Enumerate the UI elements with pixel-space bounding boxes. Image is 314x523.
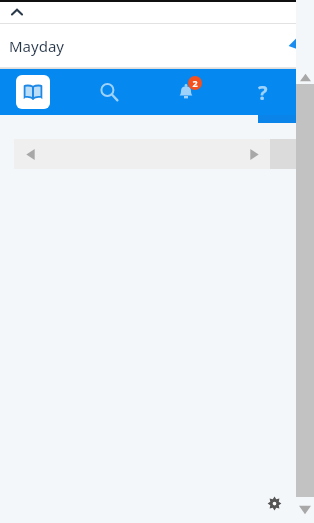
button[interactable]: Notifications (169, 75, 203, 109)
staticText: ? (258, 79, 268, 106)
button[interactable]: Scroll left (22, 146, 38, 162)
button[interactable]: Collapse (8, 4, 26, 22)
button[interactable]: App logo (284, 31, 314, 61)
staticText: 2 (192, 77, 198, 89)
button[interactable]: Library (16, 75, 50, 109)
button[interactable]: Search (92, 75, 126, 109)
button[interactable]: Help (246, 75, 280, 109)
button[interactable]: Scroll right (246, 146, 262, 162)
staticText: Mayday (9, 36, 64, 56)
button[interactable]: Settings (262, 491, 286, 515)
button[interactable]: Vertical scrollbar (296, 0, 314, 523)
